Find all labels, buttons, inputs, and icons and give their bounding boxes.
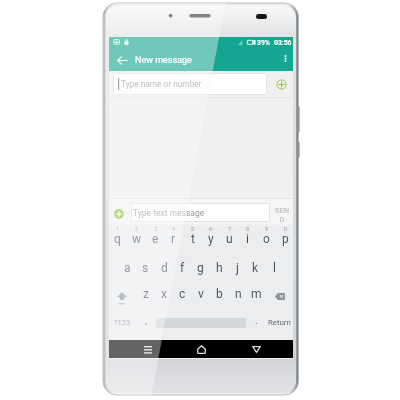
button[interactable]: Add attachment	[113, 208, 124, 219]
staticText: SEND	[273, 206, 291, 224]
staticText: 7	[228, 226, 232, 232]
staticText: 9	[265, 226, 269, 232]
button[interactable]: 4	[164, 226, 183, 253]
staticText: ?123	[114, 318, 131, 327]
button[interactable]: n	[229, 280, 247, 306]
button[interactable]: 7	[220, 226, 239, 253]
button[interactable]: 8	[238, 226, 257, 253]
staticText: v	[198, 287, 204, 301]
staticText: 39%	[257, 39, 270, 47]
staticText: 6	[209, 226, 213, 232]
button[interactable]: ?123	[109, 308, 137, 334]
button[interactable]: b	[210, 280, 228, 306]
staticText: r	[171, 232, 176, 246]
button[interactable]: 1	[108, 226, 127, 253]
staticText: q	[114, 232, 121, 246]
staticText: l	[273, 261, 276, 275]
button[interactable]: Type text message	[131, 203, 270, 222]
button[interactable]: v	[192, 280, 210, 306]
button[interactable]: c	[173, 280, 191, 306]
staticText: j	[236, 261, 239, 275]
button[interactable]: a	[118, 253, 136, 279]
button[interactable]: More options	[275, 49, 293, 71]
button[interactable]: Recent apps	[135, 340, 161, 358]
staticText: a	[124, 261, 131, 275]
staticText: Return	[268, 318, 291, 327]
button[interactable]: .	[249, 308, 263, 334]
button[interactable]: Return	[265, 308, 293, 334]
staticText: s	[142, 261, 149, 275]
button[interactable]: ,	[138, 308, 153, 334]
staticText: c	[179, 287, 186, 301]
staticText: .	[255, 315, 258, 327]
staticText: z	[143, 287, 149, 301]
button[interactable]: h	[210, 253, 228, 279]
staticText: t	[191, 232, 195, 246]
staticText: i	[246, 232, 249, 246]
button[interactable]: z	[137, 280, 155, 306]
button[interactable]: SEND	[273, 206, 291, 224]
staticText: New message	[135, 55, 192, 66]
button[interactable]: x	[155, 280, 173, 306]
staticText: f	[180, 261, 185, 275]
button[interactable]	[156, 318, 246, 328]
button[interactable]: Back	[243, 340, 269, 358]
staticText: n	[235, 287, 242, 301]
staticText: w	[132, 232, 142, 246]
staticText: Type name or number	[121, 79, 202, 89]
staticText: m	[251, 287, 262, 301]
staticText: 1	[116, 226, 120, 232]
button[interactable]: f	[173, 253, 191, 279]
staticText: o	[263, 232, 270, 246]
staticText: g	[197, 261, 204, 275]
button[interactable]: g	[191, 253, 209, 279]
staticText: x	[161, 287, 167, 301]
button[interactable]: l	[265, 253, 283, 279]
staticText: 03:56	[274, 39, 292, 47]
button[interactable]: k	[246, 253, 264, 279]
staticText: u	[226, 232, 233, 246]
staticText: 4	[172, 226, 176, 232]
button[interactable]: 2	[127, 226, 146, 253]
staticText: 5	[191, 226, 195, 232]
button[interactable]: d	[155, 253, 173, 279]
staticText: 0	[284, 226, 288, 232]
staticText: e	[152, 232, 159, 246]
staticText: Type text message	[133, 208, 205, 218]
staticText: h	[216, 261, 223, 275]
button[interactable]: Home	[189, 340, 214, 358]
staticText: k	[252, 261, 259, 275]
staticText: 8	[246, 226, 250, 232]
button[interactable]: s	[136, 253, 154, 279]
staticText: 3	[154, 226, 158, 232]
button[interactable]: Back	[112, 49, 132, 71]
button[interactable]: 6	[201, 226, 220, 253]
button[interactable]: 0	[276, 226, 295, 253]
button[interactable]: 3	[146, 226, 165, 253]
staticText: b	[216, 287, 223, 301]
staticText: d	[161, 261, 168, 275]
staticText: p	[282, 232, 289, 246]
button[interactable]: Backspace	[269, 280, 293, 306]
staticText: y	[208, 232, 214, 246]
button[interactable]: 9	[257, 226, 276, 253]
staticText: ,	[145, 315, 147, 327]
button[interactable]: Add recipient	[275, 78, 287, 90]
button[interactable]: m	[247, 280, 265, 306]
button[interactable]: j	[228, 253, 246, 279]
button[interactable]: Shift	[109, 280, 135, 306]
button[interactable]: 5	[183, 226, 202, 253]
button[interactable]: Type name or number	[113, 73, 267, 95]
staticText: 2	[135, 226, 139, 232]
